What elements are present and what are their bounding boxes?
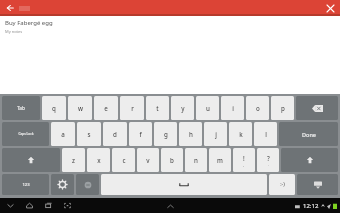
staticText: a (61, 130, 65, 138)
button[interactable]: Home (23, 199, 36, 212)
button[interactable]: Settings (51, 174, 74, 195)
button[interactable]: Screenshot (61, 199, 74, 212)
staticText: v (146, 156, 150, 164)
staticText: , (243, 162, 245, 167)
button[interactable]: w (68, 96, 92, 120)
staticText: m (217, 156, 223, 164)
button[interactable]: z (62, 148, 85, 172)
button[interactable]: l (254, 122, 277, 146)
button[interactable]: u (196, 96, 219, 120)
button[interactable]: n (185, 148, 207, 172)
button[interactable]: Done (279, 122, 338, 146)
button[interactable]: Caps Lock (2, 122, 49, 146)
button[interactable]: i (221, 96, 244, 120)
button[interactable]: Expand (164, 200, 176, 212)
staticText: e (104, 104, 108, 112)
staticText: Buy Fabergé egg (5, 19, 53, 27)
button[interactable]: d (103, 122, 127, 146)
button[interactable]: k (229, 122, 252, 146)
staticText: ! (243, 154, 245, 162)
staticText: q (52, 104, 56, 112)
staticText: p (281, 104, 285, 112)
staticText: n (194, 156, 198, 164)
staticText: g (164, 130, 168, 138)
button[interactable]: m (209, 148, 231, 172)
staticText: Caps Lock (18, 132, 34, 136)
staticText: Tab (17, 105, 25, 111)
staticText: w (78, 104, 83, 112)
staticText: l (265, 130, 267, 138)
button[interactable]: Shift (2, 148, 60, 172)
staticText: 12:12 (303, 202, 319, 210)
button[interactable]: b (161, 148, 183, 172)
staticText: z (72, 156, 75, 164)
button[interactable]: ? (257, 148, 279, 172)
staticText: o (256, 104, 260, 112)
staticText: k (239, 130, 243, 138)
button[interactable]: j (204, 122, 227, 146)
button[interactable]: e (94, 96, 118, 120)
staticText: f (139, 130, 142, 138)
staticText: 123 (22, 182, 30, 188)
button[interactable]: Hide keyboard (297, 174, 338, 195)
button[interactable]: Voice input (76, 174, 99, 195)
button[interactable]: x (87, 148, 110, 172)
button[interactable]: Tab (2, 96, 40, 120)
button[interactable]: Back (4, 199, 17, 212)
staticText: x (97, 156, 101, 164)
staticText: t (156, 104, 159, 112)
button[interactable]: Shift (281, 148, 338, 172)
staticText: d (113, 130, 117, 138)
button[interactable]: Backspace (296, 96, 338, 120)
button[interactable]: h (179, 122, 202, 146)
button[interactable]: c (112, 148, 135, 172)
staticText: c (122, 156, 126, 164)
button[interactable]: Back (3, 1, 17, 15)
staticText: u (206, 104, 210, 112)
button[interactable]: Recents (42, 199, 55, 212)
staticText: ? (267, 154, 270, 162)
staticText: y (181, 104, 185, 112)
button[interactable]: Space (101, 174, 267, 195)
button[interactable]: r (120, 96, 144, 120)
button[interactable]: v (137, 148, 159, 172)
staticText: . (268, 162, 270, 167)
staticText: s (87, 130, 91, 138)
button[interactable]: ! (233, 148, 255, 172)
button[interactable]: o (246, 96, 269, 120)
button[interactable]: Close (323, 1, 337, 15)
staticText: r (131, 104, 134, 112)
staticText: b (170, 156, 174, 164)
button[interactable]: y (171, 96, 194, 120)
staticText: Done (302, 131, 316, 138)
button[interactable]: f (129, 122, 152, 146)
button[interactable]: g (154, 122, 177, 146)
button[interactable]: q (42, 96, 66, 120)
staticText: :-) (280, 181, 285, 188)
button[interactable]: 123 (2, 174, 49, 195)
button[interactable]: :-) (269, 174, 295, 195)
button[interactable]: a (51, 122, 75, 146)
button[interactable]: s (77, 122, 101, 146)
staticText: j (215, 130, 217, 138)
staticText: h (189, 130, 193, 138)
staticText: My notes (5, 29, 23, 34)
button[interactable]: p (271, 96, 294, 120)
staticText: i (232, 104, 234, 112)
button[interactable]: t (146, 96, 169, 120)
